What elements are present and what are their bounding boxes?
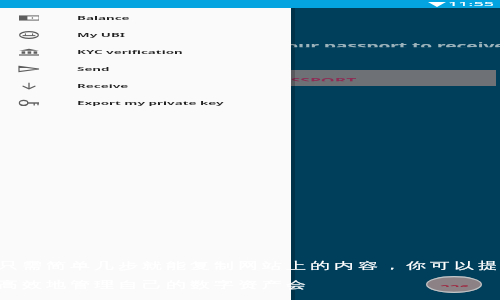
button[interactable]: Send [0, 60, 291, 77]
other: My UBI [19, 31, 39, 39]
staticText: Please verify your passport to receive [150, 41, 500, 47]
other: Balance [19, 14, 39, 22]
staticText: VERIFY PASSPORT [204, 75, 357, 81]
other: Receive [19, 82, 39, 90]
button[interactable]: Balance [0, 9, 291, 26]
staticText: Export my private key [77, 99, 224, 106]
button[interactable]: Receive [0, 77, 291, 94]
staticText: 226 [440, 282, 470, 287]
other: Send [19, 65, 39, 73]
staticText: Send [77, 65, 110, 72]
staticText: 11:55 [448, 0, 495, 6]
button[interactable]: VERIFY PASSPORT [66, 70, 496, 86]
staticText: KYC verification [77, 48, 183, 55]
other: KYC verification [19, 48, 39, 56]
button[interactable]: My UBI [0, 26, 291, 43]
staticText: 只需简单几步就能复制网站上的内容，你可以提 [0, 259, 496, 271]
button[interactable]: Export my private key [0, 94, 291, 111]
staticText: 高效地管理自己的数字资产会 [0, 278, 308, 290]
staticText: Receive [77, 82, 129, 89]
other: Export my private key [19, 99, 39, 107]
staticText: Balance [77, 14, 130, 21]
button[interactable]: KYC verification [0, 43, 291, 60]
staticText: My UBI [77, 31, 125, 38]
